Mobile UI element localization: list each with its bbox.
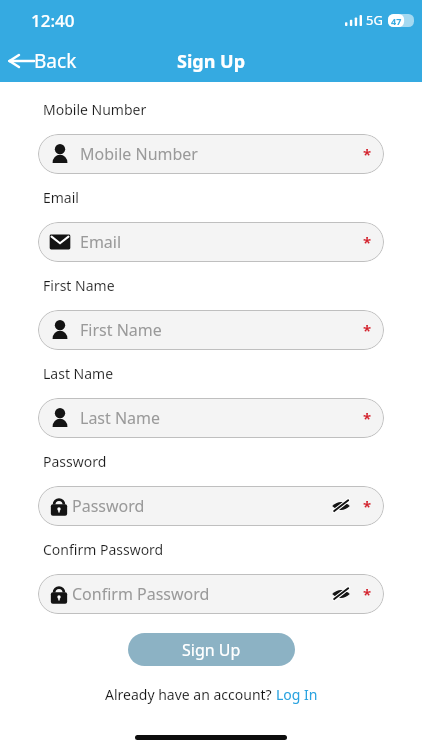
staticText: Last Name [80, 407, 363, 429]
button[interactable]: Password [38, 486, 384, 526]
staticText: * [363, 232, 372, 252]
staticText: Back [34, 48, 77, 74]
button[interactable]: First Name [38, 310, 384, 350]
staticText: Email [43, 188, 79, 207]
staticText: Confirm Password [43, 540, 164, 559]
staticText: Mobile Number [43, 100, 147, 119]
staticText: Last Name [43, 364, 114, 383]
staticText: * [363, 144, 372, 164]
button[interactable]: Last Name [38, 398, 384, 438]
staticText: Password [43, 452, 107, 471]
staticText: Mobile Number [80, 143, 363, 165]
staticText: Password [72, 495, 328, 517]
staticText: * [363, 320, 372, 340]
button[interactable]: Email [38, 222, 384, 262]
staticText: * [363, 408, 372, 428]
staticText: 12:40 [31, 9, 75, 32]
staticText: First Name [80, 319, 363, 341]
staticText: * [363, 496, 372, 516]
staticText: Sign Up [182, 639, 241, 661]
button[interactable]: Log In [276, 685, 318, 704]
button[interactable]: Confirm Password [38, 574, 384, 614]
staticText: Log In [276, 685, 318, 704]
staticText: Already have an account? [105, 685, 276, 704]
button[interactable]: Sign Up [128, 633, 295, 666]
staticText: 5G [366, 11, 383, 29]
staticText: First Name [43, 276, 115, 295]
button[interactable]: Mobile Number [38, 134, 384, 174]
staticText: Confirm Password [72, 583, 328, 605]
button[interactable]: Back [0, 44, 85, 78]
button[interactable]: Show password [328, 586, 354, 602]
staticText: Sign Up [177, 49, 246, 74]
staticText: * [363, 584, 372, 604]
button[interactable]: Show password [328, 498, 354, 514]
staticText: 47 [391, 15, 402, 27]
staticText: Email [80, 231, 363, 253]
